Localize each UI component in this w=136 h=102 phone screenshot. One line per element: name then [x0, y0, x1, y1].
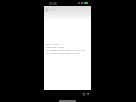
- staticText: 07:06: [49, 2, 57, 6]
- button[interactable]: Clock: [82, 92, 86, 96]
- button[interactable]: Filter: [86, 92, 90, 96]
- staticText: Inbox: [50, 8, 58, 12]
- staticText: ON THE PLANET THE LAST NIG: [46, 51, 81, 54]
- staticText: FOR CLARIT: [46, 42, 60, 45]
- staticText: WE WERE IN THE MIDST WHEN WE ORDERED LUN…: [46, 48, 93, 51]
- staticText: FEBRUARY 2020: [46, 45, 64, 48]
- button[interactable]: Account: [45, 8, 49, 12]
